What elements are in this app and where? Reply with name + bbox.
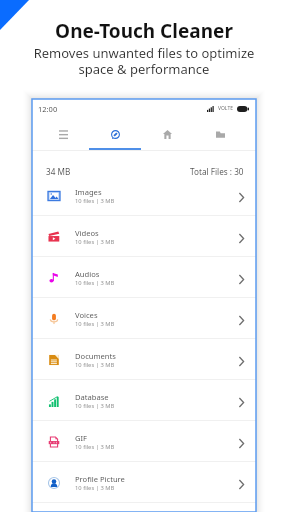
staticText: 10 files | 3 MB	[75, 443, 115, 451]
button[interactable]: Database	[32, 380, 256, 420]
button[interactable]: Voices	[32, 298, 256, 338]
staticText: 10 files | 3 MB	[75, 320, 115, 328]
staticText: Total Files : 30	[190, 166, 244, 177]
staticText: VOLTE	[218, 105, 233, 112]
staticText: 10 files | 3 MB	[75, 238, 115, 246]
button[interactable]: Videos	[32, 216, 256, 256]
staticText: Removes unwanted files to optimize space…	[0, 44, 288, 77]
staticText: Audios	[75, 269, 100, 279]
staticText: One-Touch Cleaner	[0, 18, 288, 44]
staticText: 10 files | 3 MB	[75, 484, 115, 492]
staticText: 10 files | 3 MB	[75, 402, 115, 410]
staticText: 10 files | 3 MB	[75, 197, 115, 205]
staticText: 10 files | 3 MB	[75, 361, 115, 369]
button[interactable]: Cleaner	[89, 118, 141, 151]
staticText: Videos	[75, 228, 99, 238]
button[interactable]: Documents	[32, 339, 256, 379]
staticText: 34 MB	[46, 166, 71, 177]
button[interactable]: Profile Picture	[32, 462, 256, 502]
button[interactable]: Audios	[32, 257, 256, 297]
button[interactable]: Images	[32, 175, 256, 215]
button[interactable]: Menu	[37, 118, 89, 151]
staticText: Database	[75, 392, 109, 402]
staticText: Profile Picture	[75, 474, 125, 484]
staticText: 10 files | 3 MB	[75, 279, 115, 287]
button[interactable]: Home	[141, 118, 194, 151]
staticText: Documents	[75, 351, 116, 361]
staticText: 12:00	[38, 104, 58, 114]
staticText: GIF	[75, 433, 88, 443]
staticText: Images	[75, 187, 102, 197]
staticText: Voices	[75, 310, 98, 320]
button[interactable]: Files	[194, 118, 247, 151]
button[interactable]: GIF	[32, 421, 256, 461]
